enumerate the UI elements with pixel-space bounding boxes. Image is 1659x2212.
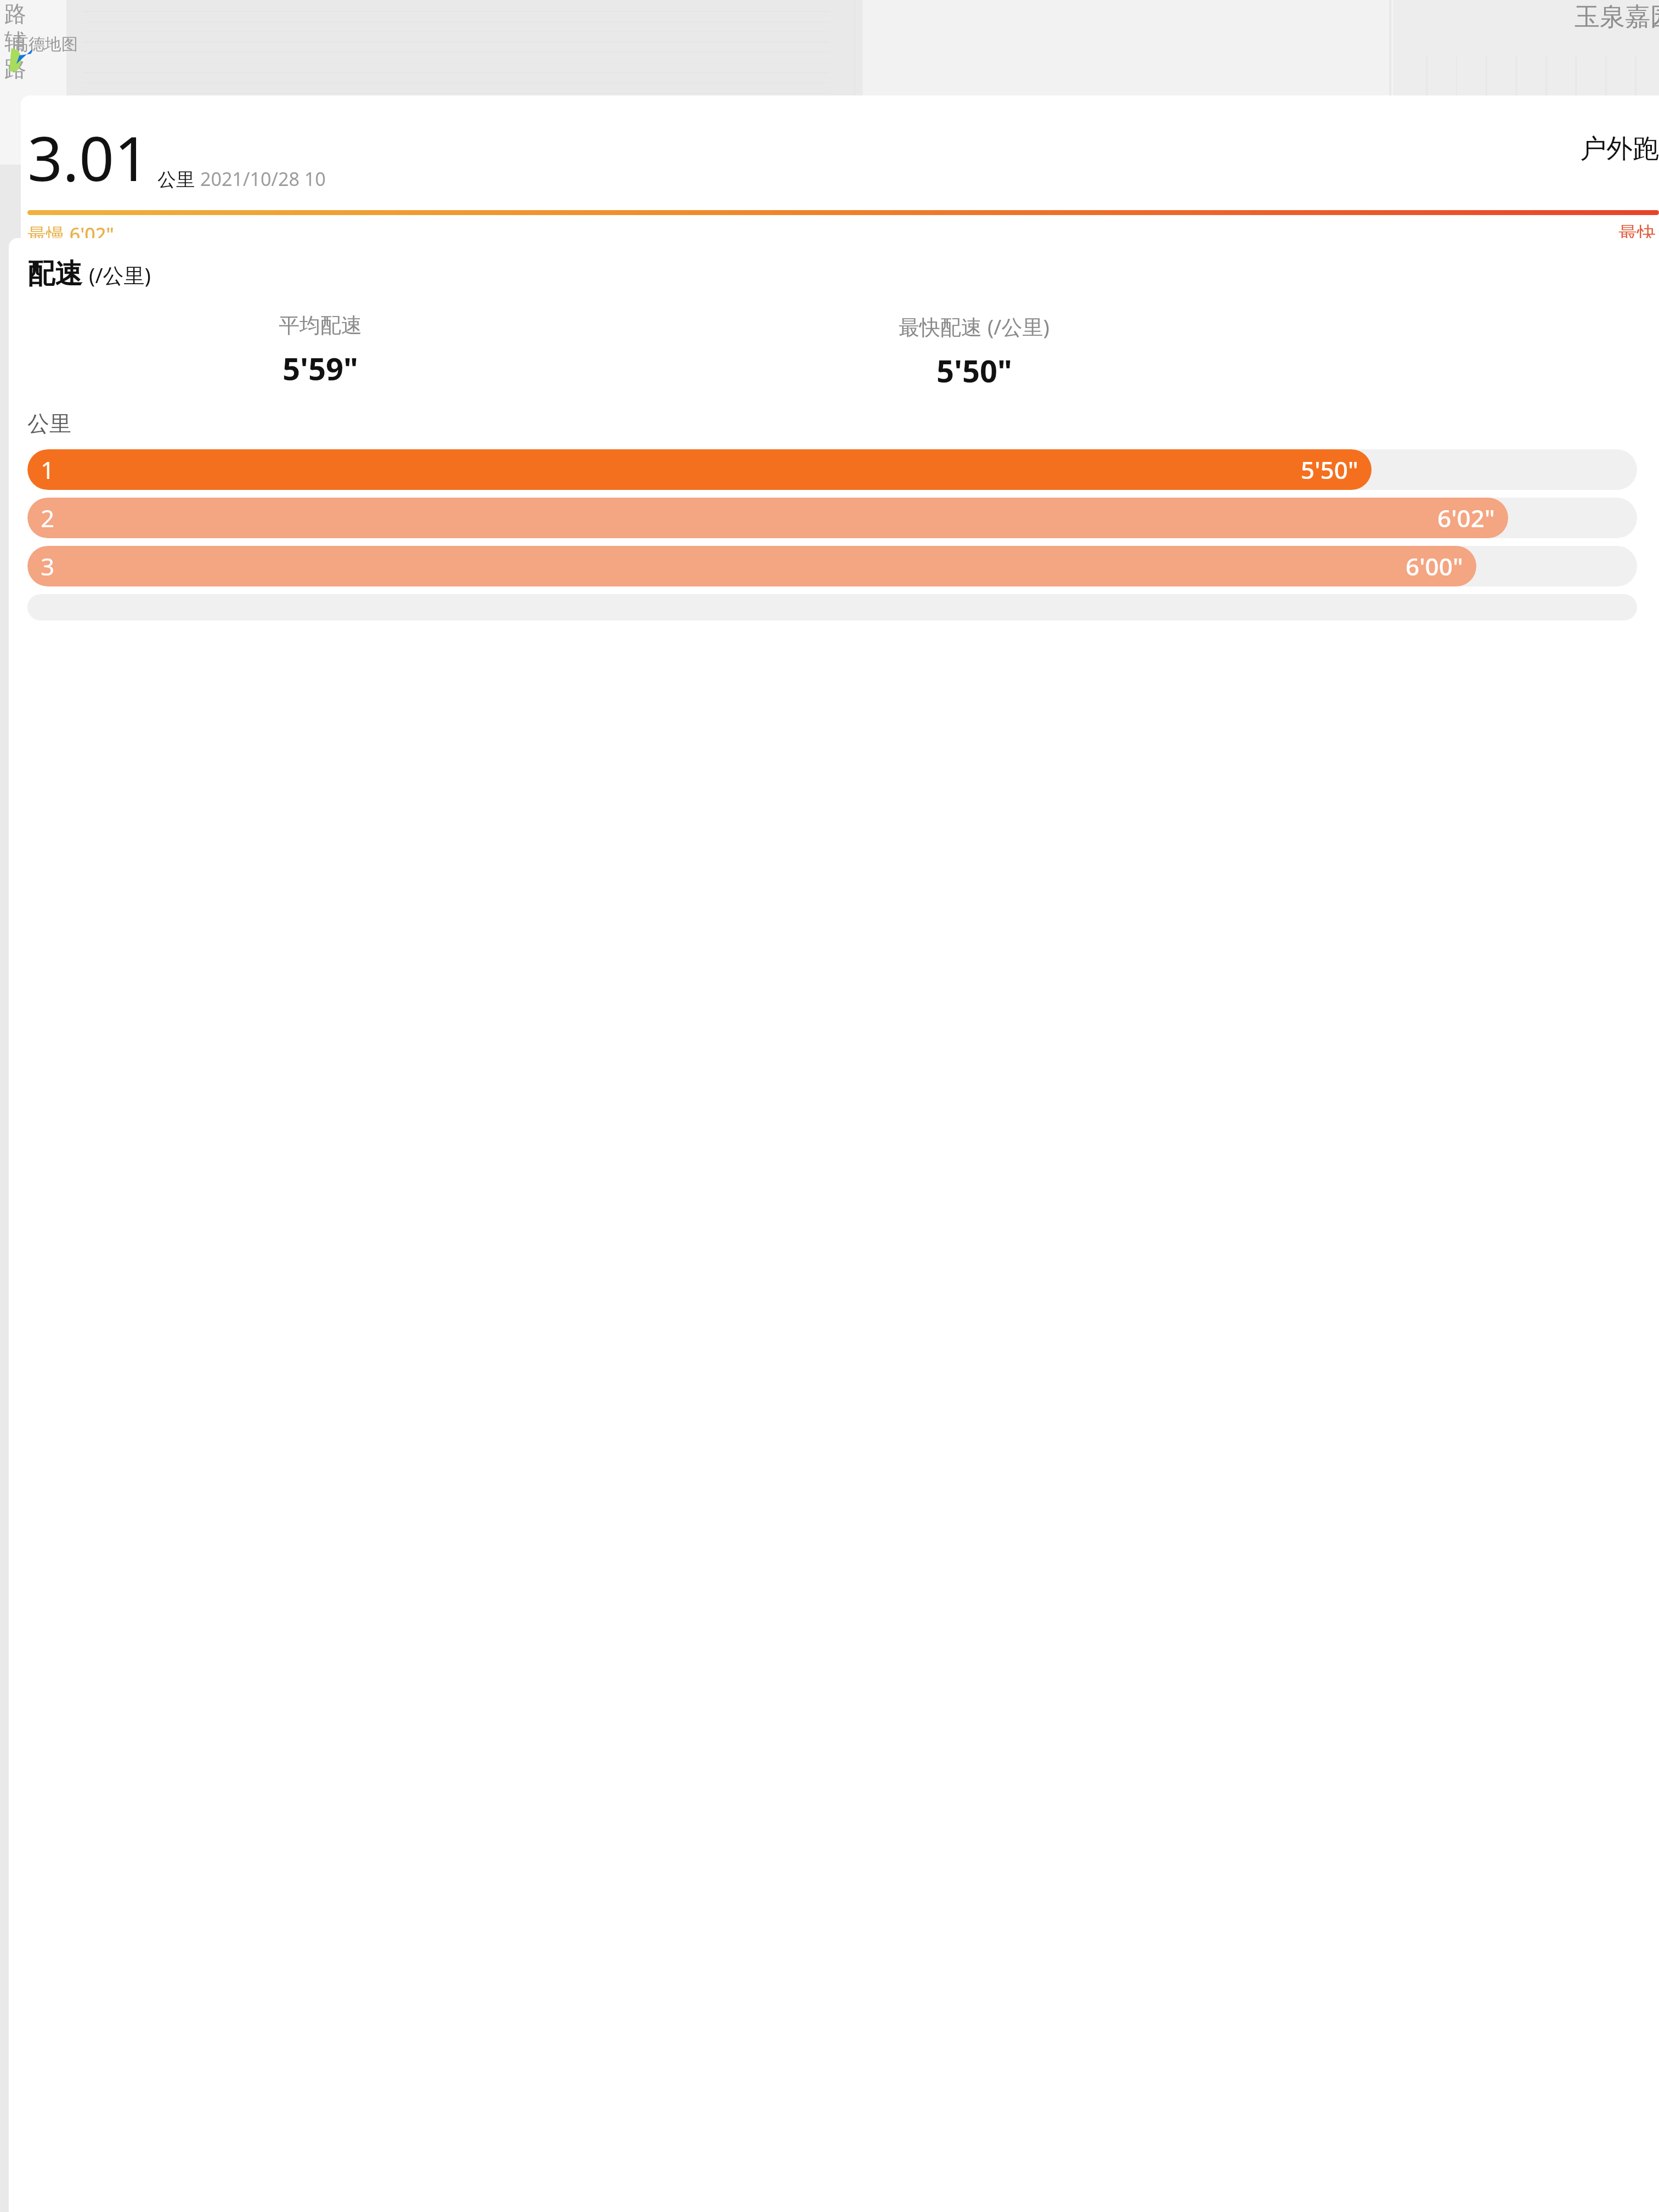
staticText: 2 <box>41 501 55 534</box>
staticText: 公里 <box>27 410 71 437</box>
staticText: 辅 <box>4 27 26 55</box>
staticText: 最快配速 (/公里) <box>899 312 1049 341</box>
staticText: 5'50" <box>936 349 1012 391</box>
staticText: 6'02" <box>1437 501 1495 534</box>
staticText: 3 <box>41 550 55 583</box>
staticText: 路 <box>4 55 26 82</box>
staticText: 3.01 <box>27 115 150 199</box>
button[interactable]: 1 <box>27 449 1637 490</box>
staticText: 1 <box>41 453 55 486</box>
staticText: (/公里) <box>89 261 151 289</box>
staticText: 高德地图 <box>12 34 78 55</box>
staticText: 最慢 6'02" <box>27 222 114 238</box>
staticText: 平均配速 <box>279 312 362 338</box>
staticText: 最快 <box>1618 222 1656 238</box>
button[interactable]: 2 <box>27 498 1637 538</box>
button[interactable]: 3.01 <box>21 95 1659 238</box>
staticText: 配速 <box>27 257 82 291</box>
staticText: 5'59" <box>283 347 358 389</box>
staticText: 公里 <box>157 168 195 191</box>
button[interactable]: 3 <box>27 546 1637 586</box>
staticText: 户外跑 <box>1580 132 1659 165</box>
staticText: 2021/10/28 10 <box>200 166 326 191</box>
staticText: 5'50" <box>1301 453 1358 486</box>
staticText: 玉泉嘉园 <box>1575 1 1659 33</box>
button[interactable]: 平均配速 <box>9 312 631 389</box>
staticText: 6'00" <box>1406 550 1463 583</box>
button[interactable]: 最快配速 (/公里) <box>631 312 1317 391</box>
staticText: 路 <box>4 0 26 27</box>
